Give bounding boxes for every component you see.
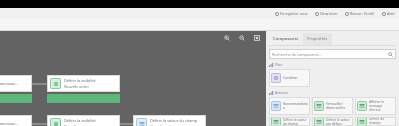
button[interactable]: Recommandation xyxy=(269,97,310,115)
button[interactable]: Composants xyxy=(269,33,303,45)
button[interactable]: Définir la valeur du champ xyxy=(269,117,310,126)
button[interactable]: Fit to screen xyxy=(253,34,261,42)
staticText: Flux xyxy=(275,62,283,67)
staticText: Actions xyxy=(275,90,289,95)
staticText: Définir la valeur du champ xyxy=(283,118,308,126)
button[interactable]: ...s commerciaux... xyxy=(0,115,32,126)
button[interactable]: Définir la valeur du champ xyxy=(133,115,206,126)
button[interactable]: Enregistrer sous xyxy=(274,10,309,17)
button[interactable]: Zoom in xyxy=(223,34,231,42)
staticText: Propriétés xyxy=(307,36,328,42)
button[interactable]: Définir la visibilité xyxy=(47,115,120,126)
staticText: Enregistrer sous xyxy=(280,11,308,16)
button[interactable]: Aide xyxy=(381,10,396,17)
button[interactable]: Afficher le message d'erreur xyxy=(355,97,396,115)
staticText: Définir la valeur par défaut xyxy=(326,118,351,126)
staticText: ...s commerciaux... xyxy=(0,121,19,126)
staticText: Aide xyxy=(387,11,395,16)
staticText: Afficher le message d'erreur xyxy=(369,100,394,112)
staticText: Désactiver xyxy=(320,11,338,16)
staticText: ...s commerciaux... xyxy=(0,81,19,86)
button[interactable]: Définir la visibilité xyxy=(47,75,120,103)
staticText: Définir la valeur du champ xyxy=(150,118,198,123)
staticText: Condition xyxy=(283,76,308,80)
staticText: Recherche de composants... xyxy=(272,52,388,57)
button[interactable]: Propriétés xyxy=(303,33,332,45)
staticText: Retour : Entité xyxy=(350,11,375,16)
button[interactable]: Définir les champs commer... xyxy=(355,117,396,126)
staticText: Nouvelle action xyxy=(64,124,89,126)
button[interactable]: Zoom out xyxy=(238,34,246,42)
staticText: Définir la visibilité xyxy=(64,118,96,123)
button[interactable]: Définir la valeur par défaut xyxy=(312,117,353,126)
button[interactable]: Recherche de composants... xyxy=(269,49,396,59)
staticText: Nouvelle action xyxy=(64,84,89,89)
button[interactable]: ...s commerciaux... xyxy=(0,75,32,103)
button[interactable]: Désactiver xyxy=(314,10,339,17)
button[interactable]: Verrouiller/déverrouiller xyxy=(312,97,353,115)
button[interactable]: Retour : Entité xyxy=(344,10,376,17)
staticText: Composants xyxy=(273,36,299,42)
staticText: Verrouiller/déverrouiller xyxy=(326,102,351,110)
button[interactable]: Condition xyxy=(269,69,310,87)
staticText: Recommandation xyxy=(283,102,308,110)
staticText: Définir les champs commer... xyxy=(369,117,394,126)
staticText: Nouvelle action xyxy=(150,124,175,126)
staticText: Définir la visibilité xyxy=(64,78,96,83)
